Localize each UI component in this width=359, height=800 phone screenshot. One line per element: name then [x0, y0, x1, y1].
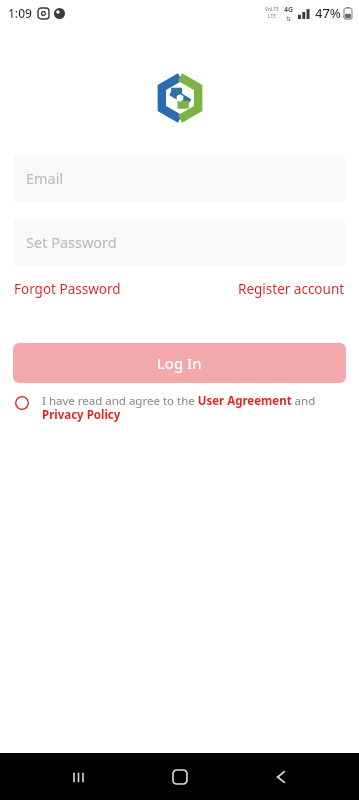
button[interactable]: Recents	[55, 754, 101, 800]
staticText: VoLTE	[265, 6, 280, 13]
button[interactable]: Back	[258, 754, 304, 800]
button[interactable]: Home	[157, 754, 203, 800]
other: Agree to terms	[14, 395, 30, 411]
button[interactable]: Log In	[13, 343, 346, 383]
button[interactable]: Forgot Password	[14, 276, 121, 302]
staticText: ⇅	[286, 15, 292, 22]
button[interactable]: Email	[14, 154, 345, 202]
button[interactable]: Set Password	[14, 218, 345, 266]
staticText: Email	[26, 168, 64, 188]
staticText: LTE	[268, 13, 277, 20]
staticText: 47%	[315, 4, 341, 22]
staticText: Forgot Password	[14, 280, 121, 298]
staticText: Set Password	[26, 232, 117, 252]
staticText: Log In	[157, 353, 202, 373]
staticText: Register account	[238, 280, 345, 298]
staticText: I have read and agree to the User Agreem…	[42, 393, 351, 422]
button[interactable]: Register account	[238, 276, 345, 302]
staticText: 4G	[284, 5, 294, 15]
staticText: 1:09	[8, 5, 32, 21]
button[interactable]: Agree to terms	[14, 393, 351, 422]
